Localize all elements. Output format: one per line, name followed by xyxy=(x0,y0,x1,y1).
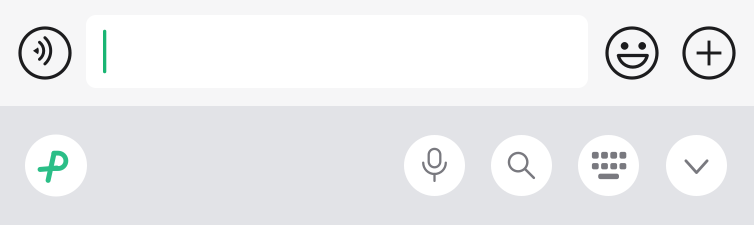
button[interactable]: Keyboard xyxy=(578,135,639,196)
button[interactable]: Hide keyboard xyxy=(666,135,727,196)
button[interactable]: Add attachment xyxy=(684,28,734,78)
button[interactable]: Dictation xyxy=(404,135,465,196)
button[interactable]: Open app xyxy=(25,134,87,196)
button[interactable]: Emoji xyxy=(607,28,657,78)
button[interactable]: Search xyxy=(491,135,552,196)
button[interactable]: Voice message xyxy=(20,28,70,78)
